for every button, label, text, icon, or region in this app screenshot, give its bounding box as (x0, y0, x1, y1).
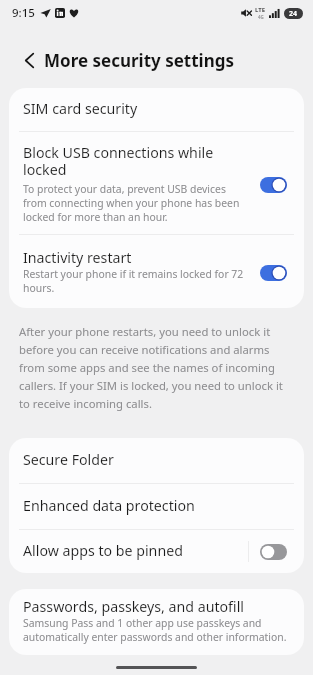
staticText: Passwords, passkeys, and autofill (23, 599, 244, 616)
staticText: SIM card security (23, 101, 138, 118)
button[interactable]: On (260, 177, 287, 193)
staticText: LTE (255, 6, 266, 14)
button[interactable]: Secure Folder (9, 438, 304, 483)
button[interactable]: Off (260, 544, 287, 560)
staticText: 24 (289, 9, 298, 19)
staticText: After your phone restarts, you need to u… (19, 322, 290, 412)
button[interactable]: Allow apps to be pinned (9, 530, 304, 573)
staticText: Inactivity restart (23, 250, 132, 267)
staticText: More security settings (44, 49, 235, 72)
staticText: Enhanced data protection (23, 498, 195, 515)
staticText: 9:15 (12, 5, 35, 21)
button[interactable]: Inactivity restart (9, 235, 304, 308)
staticText: Restart your phone if it remains locked … (23, 267, 244, 295)
button[interactable]: On (260, 265, 287, 281)
staticText: 4G (258, 14, 264, 20)
button[interactable]: SIM card security (9, 88, 304, 131)
button[interactable]: Enhanced data protection (9, 484, 304, 529)
button[interactable]: Navigate up (14, 45, 44, 75)
button[interactable]: Block USB connections while locked (9, 132, 304, 234)
staticText: To protect your data, prevent USB device… (23, 182, 244, 224)
staticText: Secure Folder (23, 452, 114, 469)
staticText: Samsung Pass and 1 other app use passkey… (23, 616, 290, 644)
button[interactable]: Passwords, passkeys, and autofill (9, 589, 304, 655)
staticText: Block USB connections while locked (23, 145, 244, 179)
staticText: Allow apps to be pinned (23, 543, 248, 560)
